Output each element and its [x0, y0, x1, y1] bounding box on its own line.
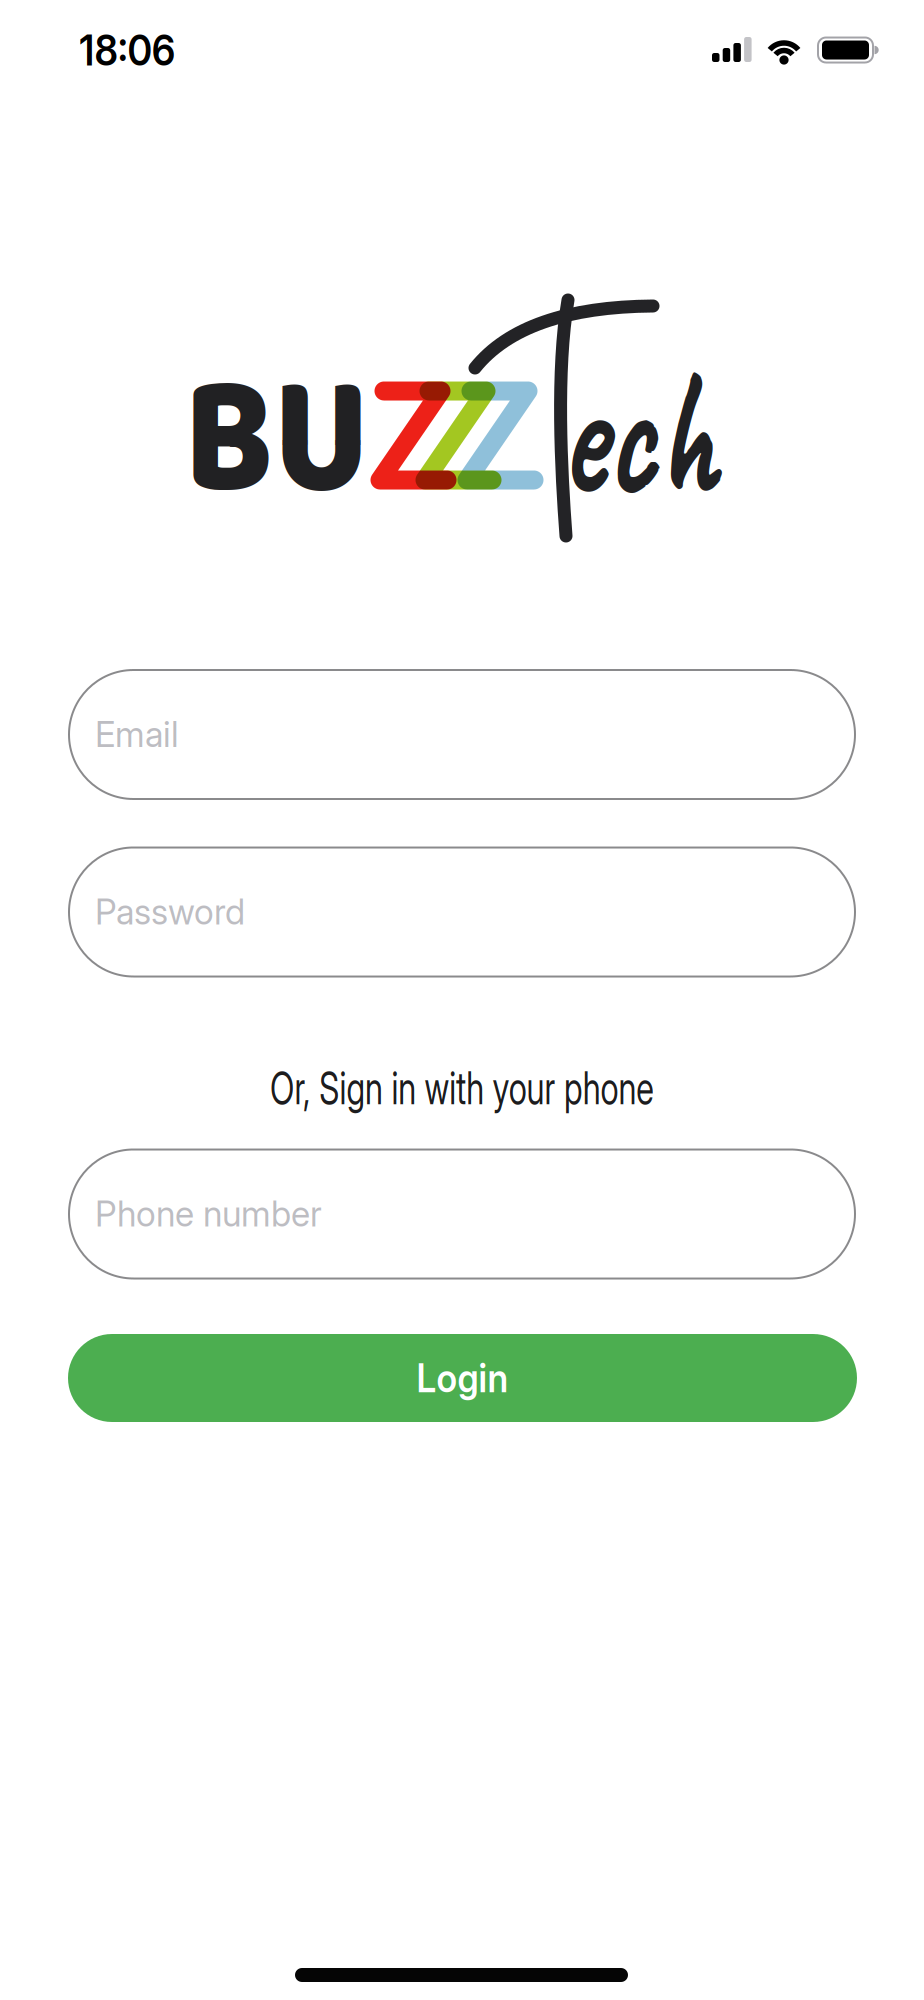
button[interactable]: Phone number	[68, 1148, 856, 1279]
button[interactable]: Login	[68, 1334, 857, 1422]
staticText: BU	[169, 307, 385, 576]
staticText: Login	[416, 1357, 508, 1399]
staticText: ech	[534, 320, 742, 545]
staticText: Or, Sign in with your phone	[236, 1065, 688, 1111]
button[interactable]: Password	[68, 846, 856, 977]
button[interactable]: Email	[68, 669, 856, 800]
staticText: 18:06	[83, 29, 170, 71]
staticText: Phone number	[95, 1193, 322, 1235]
staticText: Email	[95, 713, 179, 755]
staticText: Password	[95, 891, 245, 933]
